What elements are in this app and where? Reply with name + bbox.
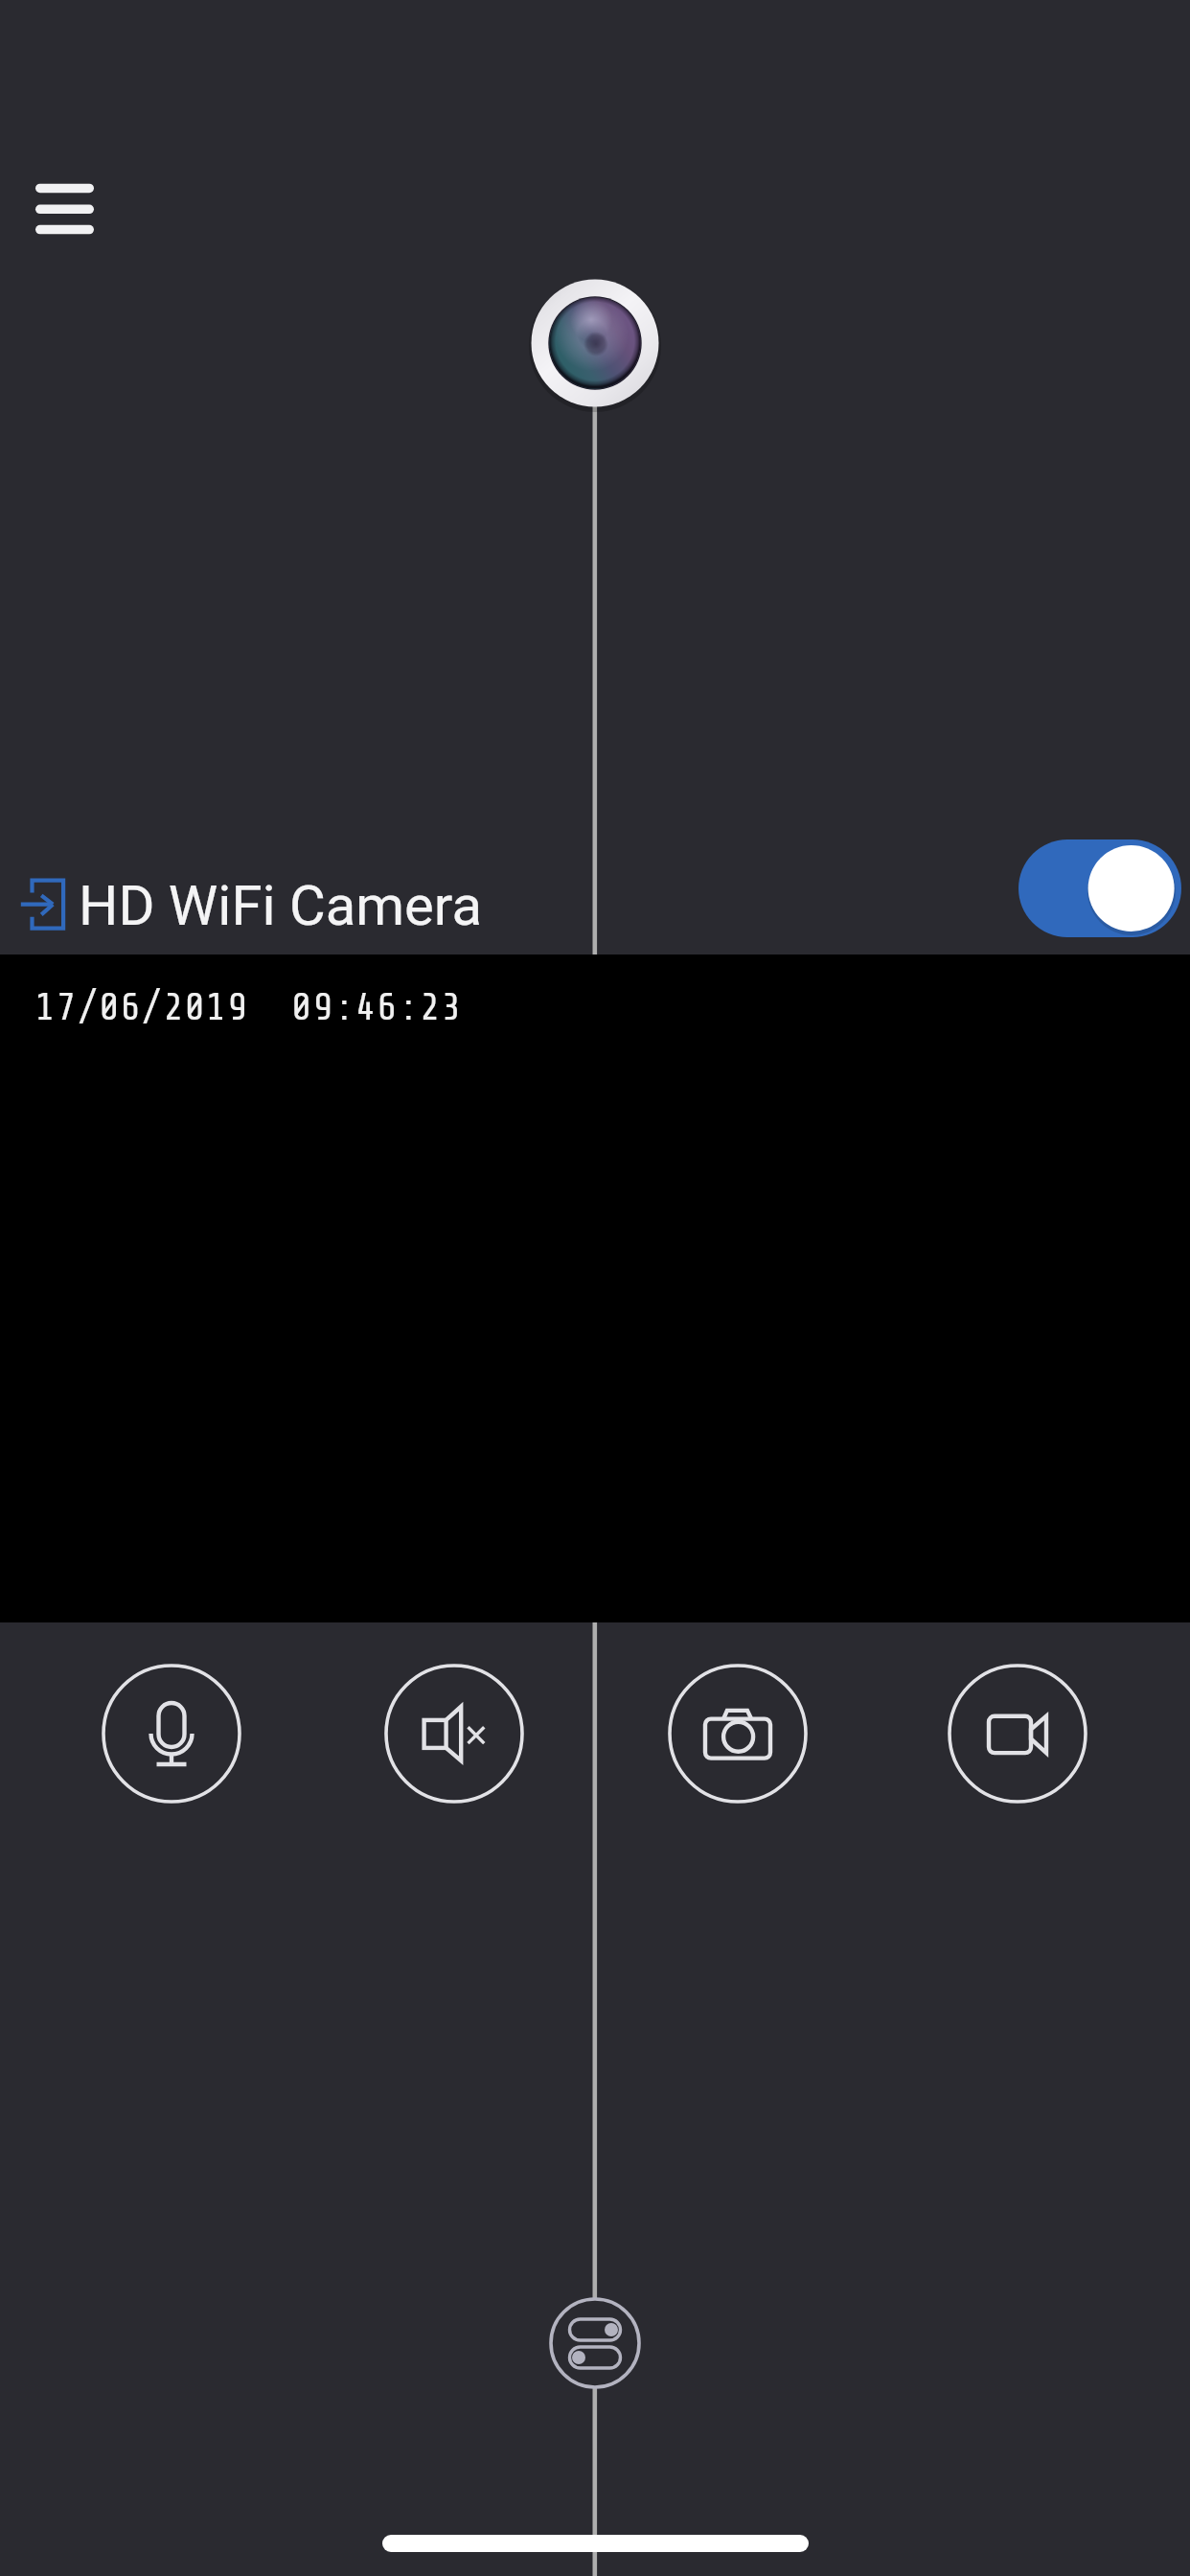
button[interactable]: Camera device	[518, 266, 672, 420]
button[interactable]: Microphone	[95, 1657, 248, 1810]
button[interactable]: Mute speaker	[378, 1657, 531, 1810]
button[interactable]: Menu	[15, 163, 113, 259]
button[interactable]: Record video	[941, 1657, 1094, 1810]
button[interactable]: Settings	[541, 2289, 649, 2397]
button[interactable]: Take photo	[661, 1657, 814, 1810]
staticText: 17/06/2019 09:46:23	[34, 986, 463, 1029]
staticText: HD WiFi Camera	[79, 873, 482, 938]
button[interactable]: Power	[1018, 839, 1181, 937]
button[interactable]: HD WiFi Camera	[0, 840, 1190, 954]
